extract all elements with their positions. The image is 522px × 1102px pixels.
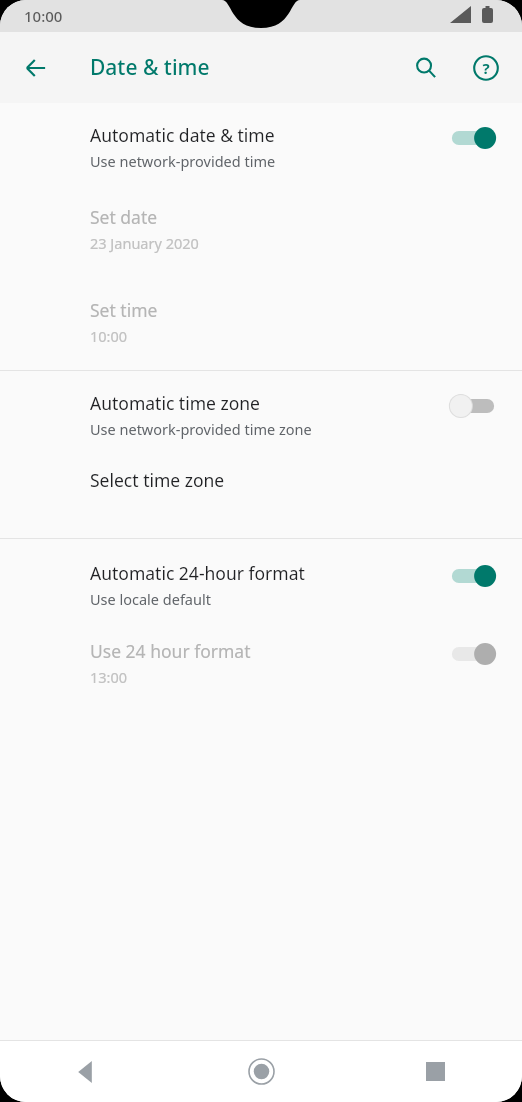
button[interactable]: Set time [0, 280, 522, 370]
other: Use 24 hour format [446, 637, 500, 671]
staticText: 10:00 [24, 6, 63, 26]
button[interactable]: Automatic 24-hour format [0, 539, 522, 619]
button[interactable]: Set date [0, 187, 522, 280]
other: Automatic date & time [446, 121, 500, 155]
staticText: Select time zone [90, 468, 225, 492]
button[interactable]: Back [12, 44, 60, 92]
staticText: Use network-provided time zone [90, 419, 312, 439]
staticText: ? [482, 58, 490, 78]
button[interactable]: Automatic date & time [0, 103, 522, 187]
button[interactable]: Search [402, 44, 450, 92]
staticText: Use locale default [90, 589, 211, 609]
staticText: Set time [90, 298, 158, 322]
other: Automatic time zone [446, 389, 500, 423]
button[interactable]: Help [462, 44, 510, 92]
other: Automatic 24-hour format [446, 559, 500, 593]
button[interactable]: Select time zone [0, 450, 522, 538]
staticText: 23 January 2020 [90, 233, 199, 253]
button[interactable]: Back [0, 1041, 174, 1102]
staticText: 10:00 [90, 326, 128, 346]
button[interactable]: Recent apps [348, 1041, 522, 1102]
button[interactable]: Home [174, 1041, 348, 1102]
staticText: Automatic 24-hour format [90, 561, 305, 585]
button[interactable]: Use 24 hour format [0, 619, 522, 699]
button[interactable]: Automatic time zone [0, 371, 522, 450]
staticText: Date & time [90, 53, 210, 82]
staticText: Set date [90, 205, 158, 229]
staticText: Use 24 hour format [90, 639, 251, 663]
staticText: 13:00 [90, 667, 128, 687]
staticText: Automatic date & time [90, 123, 275, 147]
staticText: Use network-provided time [90, 151, 276, 171]
staticText: Automatic time zone [90, 391, 260, 415]
